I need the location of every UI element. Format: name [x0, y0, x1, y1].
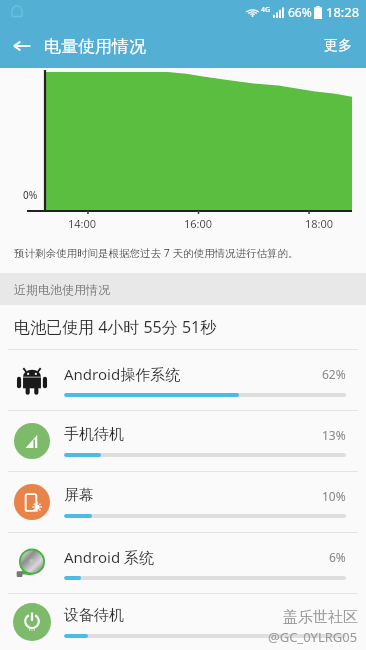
button[interactable]: 设备待机: [0, 594, 366, 650]
staticText: 更多: [324, 37, 352, 55]
staticText: 盖乐世社区: [283, 608, 358, 627]
staticText: 0%: [23, 188, 38, 202]
staticText: 18:28: [326, 3, 360, 21]
staticText: 6%: [329, 549, 346, 565]
button[interactable]: Android操作系统: [0, 350, 366, 410]
staticText: 13%: [322, 427, 346, 443]
button[interactable]: 更多: [310, 27, 366, 65]
staticText: 电池已使用 4小时 55分 51秒: [14, 316, 217, 338]
staticText: @GC_0YLRG05: [268, 628, 358, 646]
button[interactable]: 手机待机: [0, 411, 366, 471]
staticText: 66%: [288, 4, 312, 20]
staticText: Android操作系统: [64, 364, 322, 384]
staticText: 手机待机: [64, 425, 322, 444]
staticText: 4G: [261, 5, 271, 15]
staticText: 预计剩余使用时间是根据您过去 7 天的使用情况进行估算的。: [14, 246, 352, 260]
staticText: 近期电池使用情况: [14, 282, 110, 297]
button[interactable]: 屏幕: [0, 472, 366, 532]
button[interactable]: Android 系统: [0, 533, 366, 593]
staticText: 18:00: [305, 216, 334, 231]
staticText: 16:00: [184, 216, 213, 231]
staticText: 设备待机: [64, 606, 346, 625]
staticText: Android 系统: [64, 547, 329, 567]
staticText: 屏幕: [64, 486, 322, 505]
button[interactable]: Back: [0, 24, 44, 68]
staticText: 62%: [322, 366, 346, 382]
staticText: 14:00: [68, 216, 97, 231]
staticText: 10%: [322, 488, 346, 504]
staticText: 电量使用情况: [44, 36, 146, 57]
